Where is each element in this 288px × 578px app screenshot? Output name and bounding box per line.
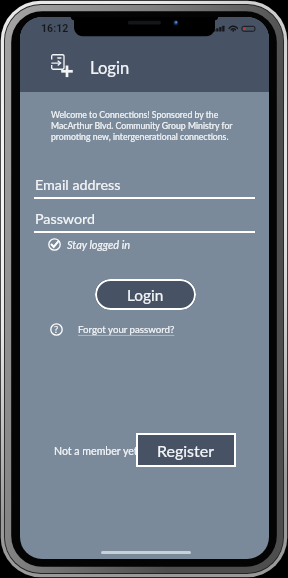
staticText: Stay logged in [67, 238, 131, 251]
staticText: Login [90, 58, 130, 78]
staticText: Welcome to Connections! Sponsored by the… [51, 109, 236, 142]
button[interactable]: Stay logged in [48, 237, 125, 252]
staticText: Not a member yet? [54, 445, 143, 458]
button[interactable]: Email address [34, 176, 255, 199]
staticText: ? [54, 324, 59, 335]
staticText: Register [157, 441, 215, 460]
button[interactable]: Register [136, 433, 236, 467]
button[interactable]: Login [95, 279, 196, 310]
staticText: Email address [35, 176, 121, 193]
button[interactable]: Password [34, 210, 255, 233]
staticText: Login [127, 286, 164, 304]
button[interactable]: ? [50, 322, 160, 336]
staticText: Password [35, 210, 96, 227]
staticText: 16:12 [41, 22, 69, 34]
staticText: Forgot your password? [78, 323, 175, 335]
button[interactable]: Login [51, 54, 72, 78]
